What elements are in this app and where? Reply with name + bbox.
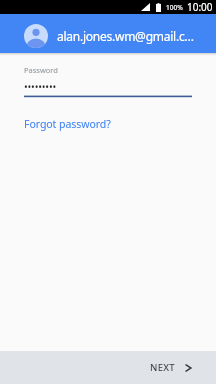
staticText: •••••••••: [24, 80, 57, 94]
button[interactable]: Account: [24, 24, 48, 48]
staticText: 10:00: [187, 0, 213, 14]
button[interactable]: Forgot password?: [0, 109, 111, 139]
button[interactable]: Password: [0, 65, 216, 98]
button[interactable]: NEXT: [134, 351, 216, 384]
staticText: alan.jones.wm@gmail.com: [57, 28, 195, 44]
staticText: Password: [24, 65, 58, 75]
staticText: 100%: [166, 3, 183, 12]
staticText: Forgot password?: [24, 117, 111, 131]
staticText: NEXT: [150, 361, 176, 374]
